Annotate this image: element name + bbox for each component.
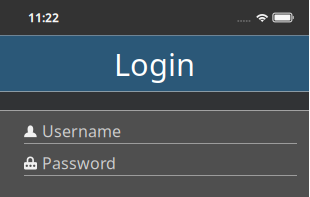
- staticText: 11:22: [28, 9, 59, 25]
- staticText: Password: [42, 152, 116, 174]
- staticText: Login: [114, 44, 195, 84]
- staticText: Username: [42, 120, 121, 142]
- button[interactable]: Password: [24, 156, 297, 176]
- button[interactable]: Username: [24, 124, 297, 144]
